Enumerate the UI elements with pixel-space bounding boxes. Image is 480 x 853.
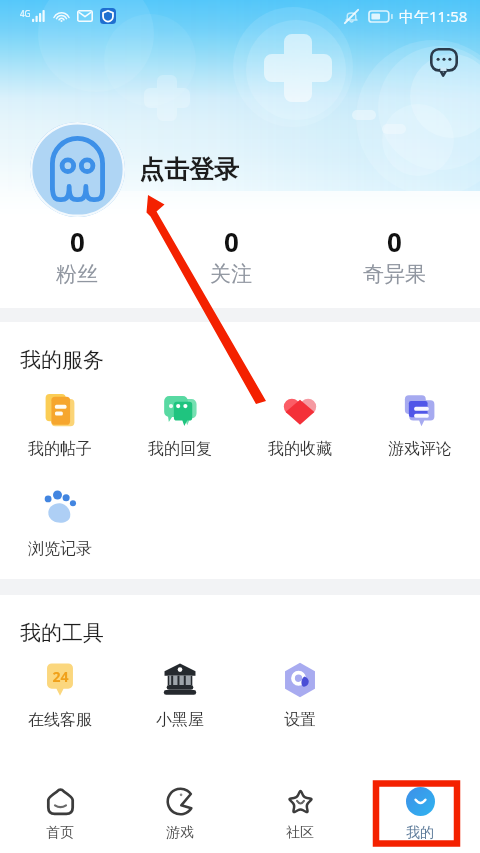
staticText: 社区 bbox=[286, 824, 314, 842]
staticText: 游戏评论 bbox=[388, 439, 452, 459]
staticText: 首页 bbox=[46, 824, 74, 842]
button[interactable]: 小黑屋 bbox=[120, 662, 240, 730]
button[interactable] bbox=[30, 122, 125, 217]
button[interactable]: 点击登录 bbox=[139, 154, 239, 185]
staticText: 我的服务 bbox=[20, 347, 104, 373]
staticText: 游戏 bbox=[166, 824, 194, 842]
button[interactable]: 0 bbox=[334, 224, 454, 287]
staticText: 设置 bbox=[284, 710, 316, 730]
button[interactable]: 0 bbox=[17, 224, 137, 287]
staticText: 在线客服 bbox=[28, 710, 92, 730]
staticText: 中午11:58 bbox=[399, 6, 468, 26]
button[interactable]: 游戏评论 bbox=[360, 391, 480, 459]
staticText: 4G bbox=[20, 8, 31, 19]
staticText: 0 bbox=[70, 224, 85, 259]
button[interactable]: 0 bbox=[171, 224, 291, 287]
button[interactable]: 我的帖子 bbox=[0, 391, 120, 459]
staticText: 我的收藏 bbox=[268, 439, 332, 459]
staticText: 我的工具 bbox=[20, 620, 104, 646]
button[interactable]: 设置 bbox=[240, 662, 360, 730]
button[interactable]: 首页 bbox=[0, 775, 120, 853]
staticText: 小黑屋 bbox=[156, 710, 204, 730]
staticText: 我的 bbox=[406, 824, 434, 842]
button[interactable]: 24 bbox=[0, 662, 120, 730]
staticText: 浏览记录 bbox=[28, 539, 92, 559]
staticText: 24 bbox=[52, 667, 69, 686]
staticText: 奇异果 bbox=[363, 261, 426, 287]
staticText: 粉丝 bbox=[56, 261, 98, 287]
staticText: 关注 bbox=[210, 261, 252, 287]
button[interactable]: 我的收藏 bbox=[240, 391, 360, 459]
staticText: 我的回复 bbox=[148, 439, 212, 459]
button[interactable]: 我的回复 bbox=[120, 391, 240, 459]
staticText: 0 bbox=[224, 224, 239, 259]
staticText: 我的帖子 bbox=[28, 439, 92, 459]
staticText: 0 bbox=[387, 224, 402, 259]
button[interactable]: 浏览记录 bbox=[0, 491, 120, 559]
button[interactable]: 我的 bbox=[360, 775, 480, 853]
button[interactable]: 游戏 bbox=[120, 775, 240, 853]
button[interactable]: 社区 bbox=[240, 775, 360, 853]
button[interactable]: Messages bbox=[424, 42, 464, 82]
